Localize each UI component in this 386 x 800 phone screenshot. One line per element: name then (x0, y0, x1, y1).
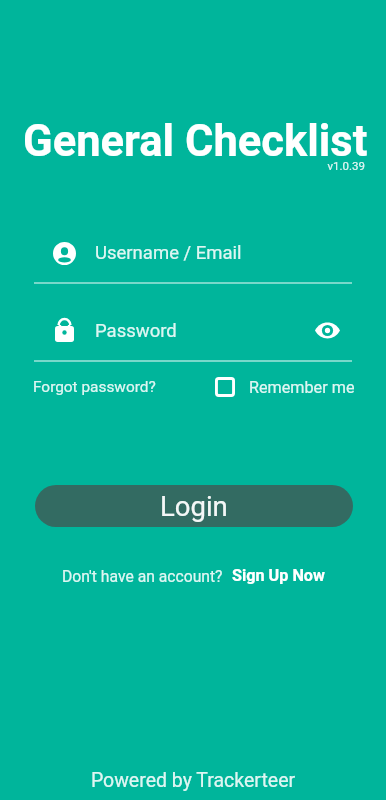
staticText: v1.0.39 (0, 159, 365, 172)
button[interactable]: Show password (310, 315, 344, 345)
button[interactable]: Username / Email (34, 233, 352, 285)
staticText: Sign Up Now (232, 566, 325, 585)
staticText: Login (160, 490, 228, 522)
button[interactable]: Password (34, 311, 352, 363)
staticText: Remember me (249, 378, 355, 397)
button[interactable]: Remember me (215, 377, 355, 397)
staticText: Username / Email (95, 242, 242, 264)
staticText: Powered by Trackerteer (0, 769, 386, 792)
button[interactable]: Sign Up Now (232, 566, 325, 585)
staticText: Don't have an account? (62, 567, 223, 585)
staticText: Password (95, 320, 177, 342)
staticText: General Checklist (23, 116, 368, 167)
staticText: Forgot password? (33, 378, 156, 396)
button[interactable]: Forgot password? (33, 378, 156, 396)
button[interactable]: Login (35, 485, 353, 527)
